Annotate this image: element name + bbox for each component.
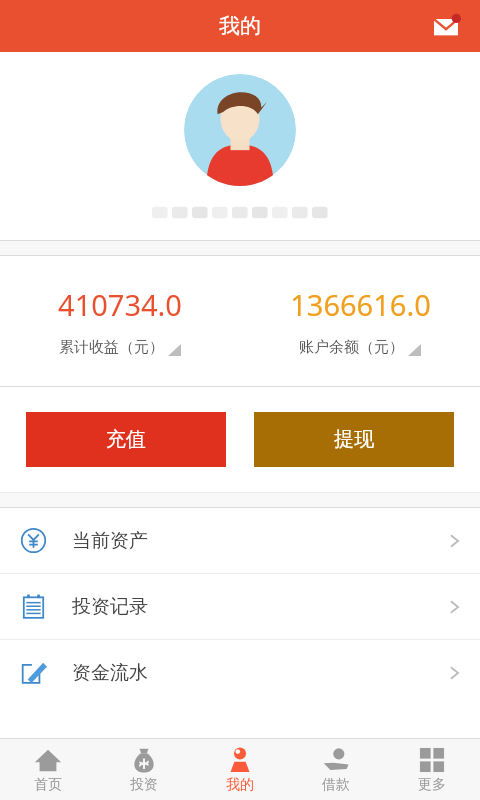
- staticText: 1366616.0: [290, 285, 431, 324]
- staticText: 当前资产: [72, 529, 148, 553]
- button[interactable]: 借款: [288, 739, 384, 800]
- staticText: 投资: [130, 776, 158, 794]
- button[interactable]: 投资: [96, 739, 192, 800]
- staticText: 410734.0: [58, 285, 182, 324]
- button[interactable]: 我的: [192, 739, 288, 800]
- staticText: 账户余额（元）: [299, 338, 404, 357]
- button[interactable]: 首页: [0, 739, 96, 800]
- staticText: 充值: [106, 427, 146, 452]
- button[interactable]: 提现: [254, 412, 454, 467]
- button[interactable]: 更多: [384, 739, 480, 800]
- staticText: 我的: [219, 13, 261, 39]
- button[interactable]: 充值: [26, 412, 226, 467]
- staticText: 更多: [418, 776, 446, 794]
- button[interactable]: 资金流水: [0, 640, 480, 705]
- button[interactable]: 1366616.0: [240, 256, 480, 386]
- staticText: 首页: [34, 776, 62, 794]
- button[interactable]: 410734.0: [0, 256, 240, 386]
- button[interactable]: 投资记录: [0, 574, 480, 639]
- staticText: 投资记录: [72, 595, 148, 619]
- staticText: 累计收益（元）: [59, 338, 164, 357]
- staticText: 我的: [226, 776, 254, 794]
- button[interactable]: Messages: [424, 4, 468, 48]
- staticText: 资金流水: [72, 661, 148, 685]
- button[interactable]: 当前资产: [0, 508, 480, 573]
- staticText: 提现: [334, 427, 374, 452]
- staticText: 借款: [322, 776, 350, 794]
